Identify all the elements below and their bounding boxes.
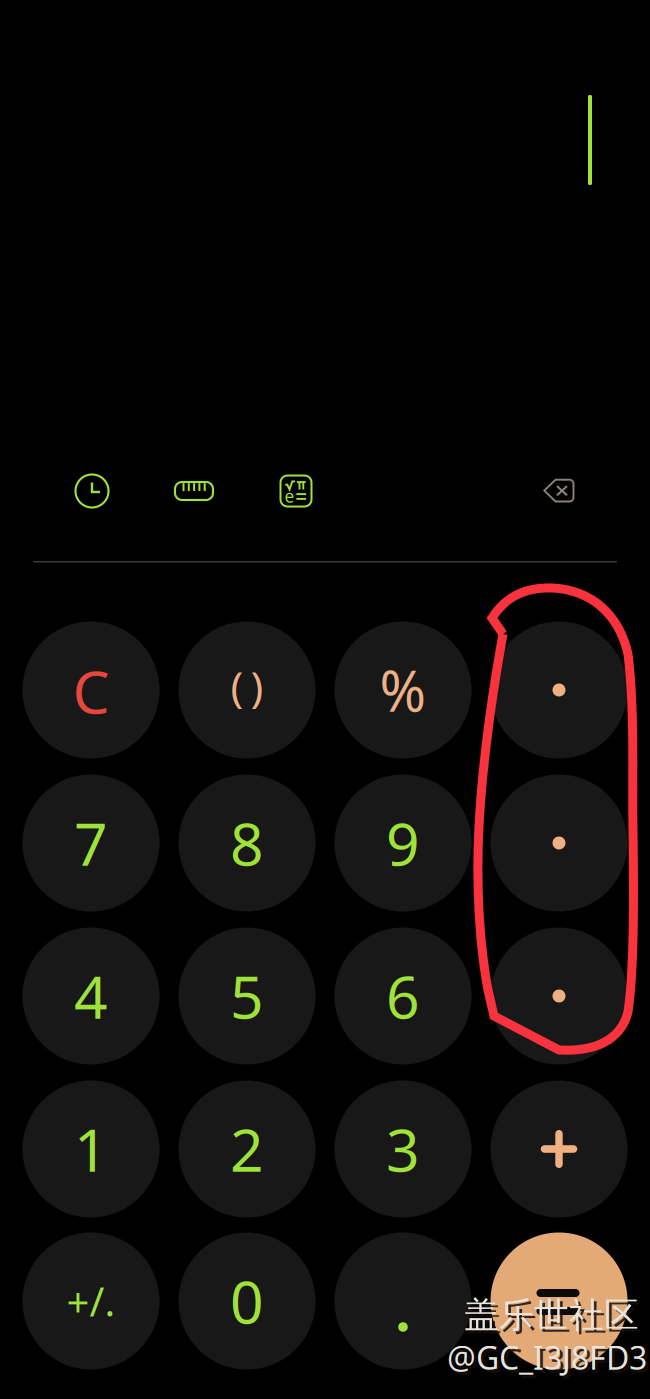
staticText: % — [379, 653, 426, 727]
button[interactable]: 0 — [178, 1232, 315, 1369]
staticText: e — [285, 484, 295, 507]
staticText: 5 — [230, 957, 264, 1035]
staticText: 3 — [386, 1110, 420, 1188]
button[interactable]: Add — [490, 1080, 627, 1217]
button[interactable]: % — [334, 621, 471, 758]
button[interactable]: 2 — [178, 1080, 315, 1217]
button[interactable]: 1 — [22, 1080, 159, 1217]
button[interactable]: 3 — [334, 1080, 471, 1217]
staticText: 9 — [386, 804, 420, 882]
button[interactable]: C — [22, 621, 159, 758]
staticText: +/. — [66, 1274, 115, 1327]
button[interactable]: Equals — [490, 1232, 627, 1369]
staticText: 4 — [74, 957, 108, 1035]
button[interactable]: 7 — [22, 774, 159, 911]
button[interactable]: Subtract — [490, 927, 627, 1064]
button[interactable]: History — [64, 463, 120, 519]
button[interactable]: 4 — [22, 927, 159, 1064]
button[interactable]: Divide — [490, 621, 627, 758]
staticText: 盖乐世社区 — [467, 1297, 642, 1340]
button[interactable]: Delete — [531, 463, 587, 519]
button[interactable]: +/. — [22, 1232, 159, 1369]
button[interactable]: Multiply — [490, 774, 627, 911]
staticText: @GC_I3J8FD3 — [450, 1339, 650, 1381]
staticText: 6 — [386, 957, 420, 1035]
staticText: @GC_I3J8FD3 — [447, 1336, 647, 1378]
staticText: ( ) — [230, 658, 263, 714]
button[interactable]: 9 — [334, 774, 471, 911]
staticText: 8 — [230, 804, 264, 882]
button[interactable]: ( ) — [178, 621, 315, 758]
staticText: 7 — [74, 804, 108, 882]
button[interactable]: Unit converter — [166, 463, 222, 519]
staticText: C — [72, 652, 109, 730]
button[interactable]: Scientific keypad — [268, 463, 324, 519]
button[interactable]: 8 — [178, 774, 315, 911]
staticText: 2 — [230, 1110, 264, 1188]
button[interactable]: 6 — [334, 927, 471, 1064]
staticText: 盖乐世社区 — [464, 1294, 639, 1337]
staticText: 1 — [74, 1110, 108, 1188]
button[interactable]: Decimal point — [334, 1232, 471, 1369]
staticText: 0 — [230, 1262, 264, 1340]
button[interactable]: 5 — [178, 927, 315, 1064]
